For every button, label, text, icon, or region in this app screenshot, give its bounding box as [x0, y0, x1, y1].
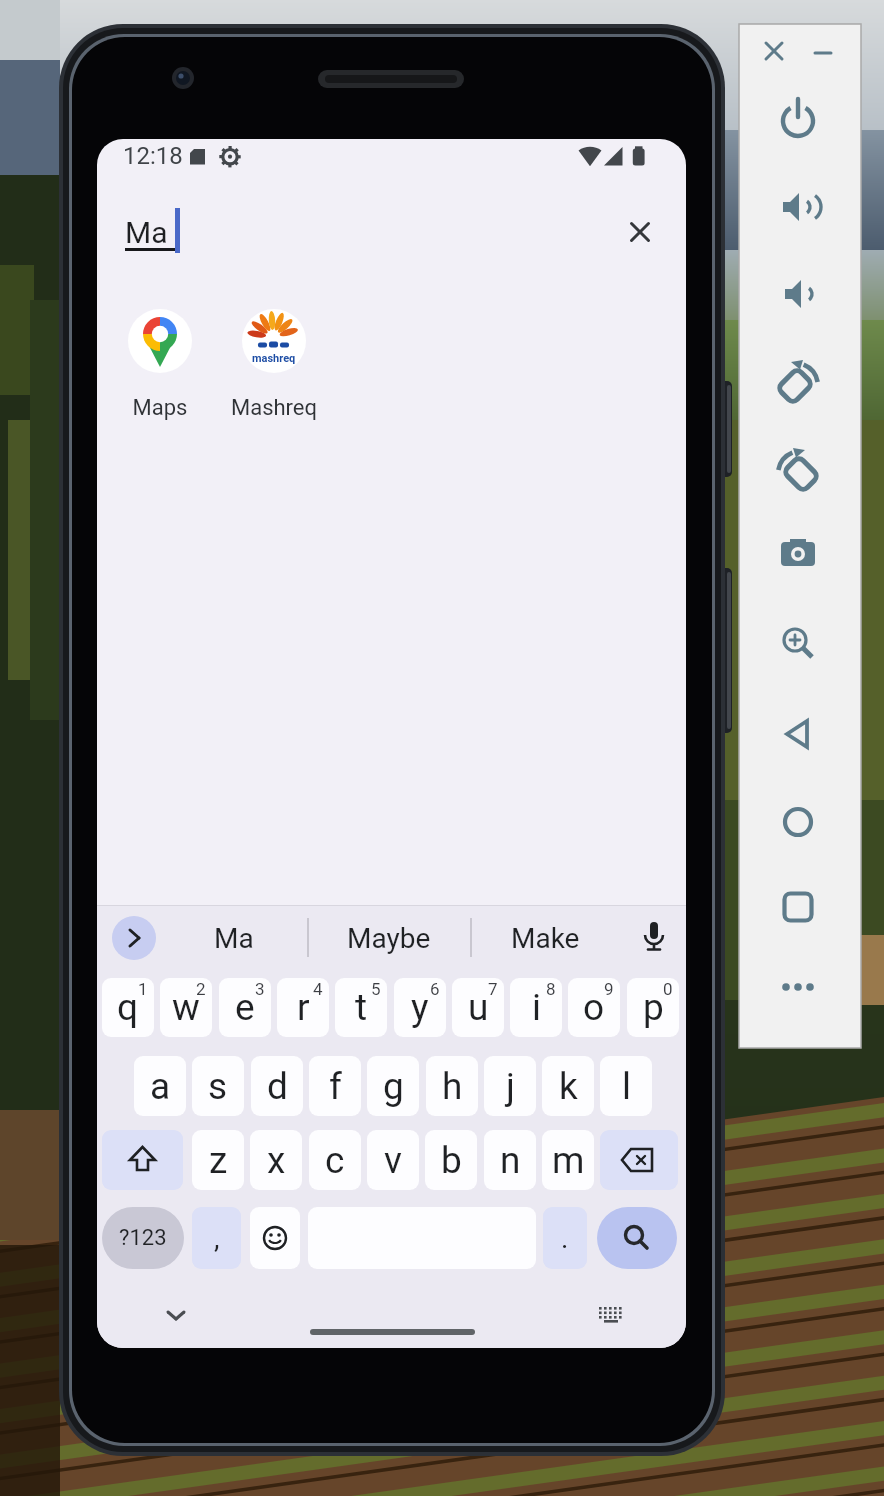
button[interactable]: s — [192, 1056, 244, 1116]
button[interactable]: d — [251, 1056, 303, 1116]
staticText: m — [552, 1139, 585, 1182]
staticText: c — [325, 1139, 345, 1182]
button[interactable]: z — [192, 1130, 244, 1190]
button[interactable] — [776, 97, 820, 141]
staticText: , — [214, 1222, 220, 1255]
staticText: ?123 — [119, 1225, 167, 1251]
button[interactable] — [595, 1299, 627, 1331]
button[interactable]: , — [192, 1207, 241, 1269]
button[interactable]: a — [134, 1056, 186, 1116]
staticText: 5 — [371, 979, 381, 999]
staticText: Ma — [125, 215, 168, 250]
button[interactable]: n — [484, 1130, 536, 1190]
staticText: 4 — [313, 979, 323, 999]
button[interactable] — [759, 36, 789, 66]
staticText: u — [468, 986, 489, 1029]
button[interactable]: c — [309, 1130, 361, 1190]
staticText: 0 — [663, 979, 673, 999]
staticText: Maps — [110, 395, 210, 423]
button[interactable]: Maybe — [329, 918, 449, 958]
staticText: 8 — [546, 979, 556, 999]
button[interactable] — [112, 916, 156, 960]
button[interactable] — [776, 800, 820, 844]
staticText: e — [235, 986, 255, 1029]
button[interactable] — [102, 1130, 183, 1190]
button[interactable] — [634, 917, 674, 957]
button[interactable]: . — [543, 1207, 587, 1269]
button[interactable]: g — [367, 1056, 419, 1116]
button[interactable] — [772, 447, 822, 497]
button[interactable]: u — [452, 978, 504, 1037]
button[interactable] — [774, 359, 824, 409]
staticText: k — [559, 1065, 578, 1108]
button[interactable] — [776, 965, 820, 1009]
button[interactable]: ?123 — [102, 1207, 184, 1269]
button[interactable]: r — [277, 978, 329, 1037]
button[interactable] — [776, 621, 820, 665]
button[interactable]: y — [394, 978, 446, 1037]
button[interactable]: o — [568, 978, 620, 1037]
staticText: s — [208, 1065, 228, 1108]
button[interactable]: b — [425, 1130, 477, 1190]
staticText: 1 — [138, 979, 148, 999]
button[interactable]: h — [426, 1056, 478, 1116]
staticText: r — [297, 986, 310, 1029]
button[interactable]: q — [102, 978, 154, 1037]
staticText: Maybe — [347, 922, 431, 955]
button[interactable] — [597, 1207, 677, 1269]
staticText: z — [209, 1139, 228, 1182]
button[interactable]: e — [219, 978, 271, 1037]
staticText: o — [583, 986, 605, 1029]
staticText: 7 — [488, 979, 498, 999]
staticText: q — [117, 986, 139, 1029]
staticText: i — [532, 986, 541, 1029]
button[interactable] — [158, 1297, 194, 1333]
staticText: . — [561, 1222, 569, 1255]
button[interactable] — [776, 185, 820, 229]
button[interactable]: i — [510, 978, 562, 1037]
button[interactable] — [600, 1130, 678, 1190]
button[interactable] — [310, 1329, 475, 1335]
button[interactable] — [622, 214, 658, 250]
staticText: y — [411, 986, 429, 1029]
staticText: a — [150, 1065, 171, 1108]
staticText: t — [355, 986, 368, 1029]
staticText: h — [442, 1065, 463, 1108]
staticText: p — [643, 986, 664, 1029]
staticText: Make — [511, 922, 580, 955]
button[interactable]: Make — [485, 918, 605, 958]
button[interactable]: t — [335, 978, 387, 1037]
staticText: v — [384, 1139, 402, 1182]
staticText: Mashreq — [224, 395, 324, 423]
button[interactable]: p — [627, 978, 679, 1037]
button[interactable] — [776, 272, 820, 316]
button[interactable]: j — [484, 1056, 536, 1116]
button[interactable] — [250, 1207, 300, 1269]
staticText: mashreq — [252, 352, 296, 365]
button[interactable]: w — [160, 978, 212, 1037]
button[interactable]: m — [542, 1130, 594, 1190]
staticText: n — [500, 1139, 521, 1182]
staticText: f — [329, 1065, 342, 1108]
button[interactable]: f — [309, 1056, 361, 1116]
button[interactable] — [776, 885, 820, 929]
staticText: 6 — [430, 979, 440, 999]
button[interactable]: mashreq — [242, 309, 306, 373]
button[interactable] — [776, 529, 820, 573]
staticText: Ma — [214, 922, 254, 955]
button[interactable] — [776, 712, 820, 756]
button[interactable]: x — [250, 1130, 302, 1190]
button[interactable]: Ma — [194, 918, 274, 958]
staticText: d — [267, 1065, 288, 1108]
staticText: 3 — [255, 979, 265, 999]
button[interactable]: v — [367, 1130, 419, 1190]
button[interactable]: l — [600, 1056, 652, 1116]
button[interactable]: k — [542, 1056, 594, 1116]
button[interactable] — [128, 309, 192, 373]
button[interactable] — [808, 38, 838, 68]
staticText: 12:18 — [123, 142, 183, 170]
staticText: 2 — [196, 979, 206, 999]
staticText: b — [441, 1139, 462, 1182]
staticText: g — [383, 1065, 404, 1108]
